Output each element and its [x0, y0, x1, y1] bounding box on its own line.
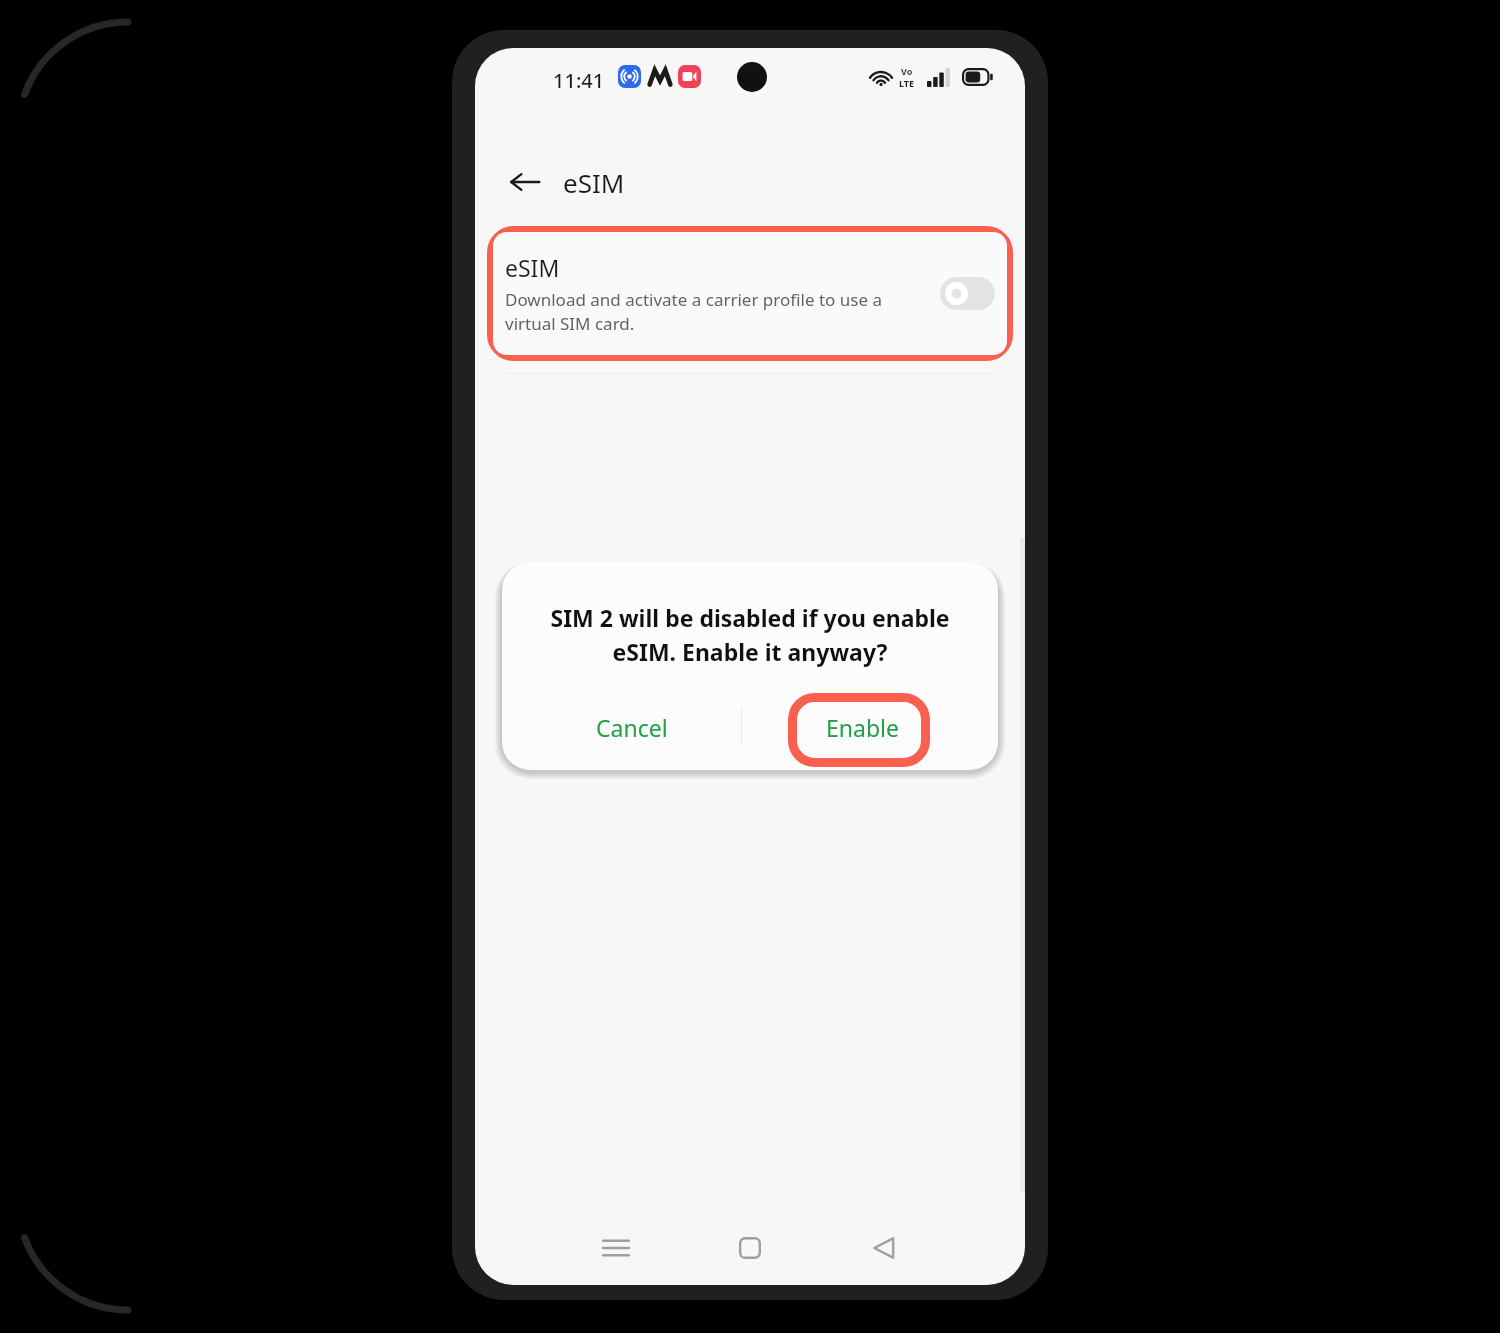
- staticText: Download and activate a carrier profile …: [505, 288, 926, 335]
- staticText: 11:41: [553, 67, 605, 94]
- staticText: Cancel: [596, 712, 668, 743]
- button[interactable]: Enable: [784, 702, 940, 752]
- button[interactable]: eSIM toggle, off: [940, 277, 995, 310]
- button[interactable]: Home: [727, 1225, 773, 1271]
- button[interactable]: Back: [860, 1225, 906, 1271]
- staticText: eSIM: [505, 252, 560, 283]
- staticText: SIM 2 will be disabled if you enable eSI…: [534, 602, 966, 667]
- staticText: eSIM: [563, 165, 625, 200]
- button[interactable]: Back: [501, 158, 549, 206]
- button[interactable]: Recent apps: [593, 1225, 639, 1271]
- button[interactable]: eSIM: [493, 232, 1007, 355]
- button[interactable]: Cancel: [554, 702, 710, 752]
- staticText: Vo: [901, 65, 913, 77]
- staticText: LTE: [899, 77, 915, 89]
- staticText: Enable: [826, 712, 899, 743]
